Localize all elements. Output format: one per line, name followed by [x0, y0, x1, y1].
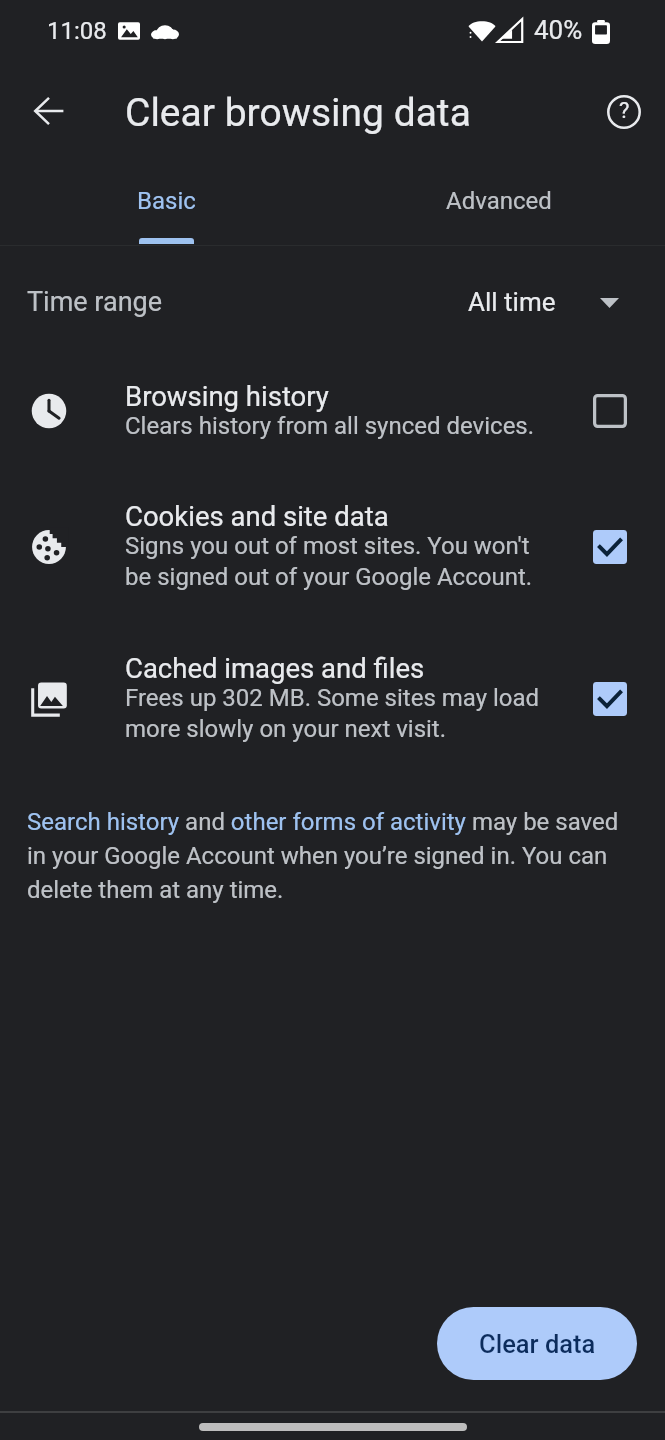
button[interactable]: Cookies and site data — [0, 482, 665, 616]
staticText: 40% — [534, 15, 583, 45]
staticText: Advanced — [446, 187, 552, 215]
staticText: All time — [468, 287, 556, 317]
staticText: Browsing history — [125, 380, 329, 412]
staticText: Clears history from all synced devices. — [125, 412, 535, 440]
staticText: ? — [619, 98, 630, 124]
staticText: Clear data — [479, 1329, 596, 1359]
staticText: Cookies and site data — [125, 500, 389, 532]
button[interactable]: Help — [594, 82, 654, 142]
button[interactable]: Browsing history — [0, 362, 665, 466]
staticText: Time range — [27, 286, 163, 318]
staticText: Search history and other forms of activi… — [27, 808, 639, 904]
button[interactable]: Advanced — [332, 160, 665, 245]
staticText: Signs you out of most sites. You won't b… — [125, 532, 561, 591]
staticText: Clear browsing data — [125, 90, 471, 136]
button[interactable]: Basic — [0, 160, 332, 245]
staticText: Frees up 302 MB. Some sites may load mor… — [125, 684, 561, 743]
staticText: 11:08 — [47, 17, 107, 45]
button[interactable]: Back — [20, 82, 78, 140]
button[interactable]: Clear data — [437, 1307, 637, 1380]
staticText: Basic — [137, 187, 196, 215]
button[interactable]: Time range — [0, 256, 665, 348]
button[interactable]: Cached images and files — [0, 634, 665, 768]
staticText: Cached images and files — [125, 652, 425, 684]
